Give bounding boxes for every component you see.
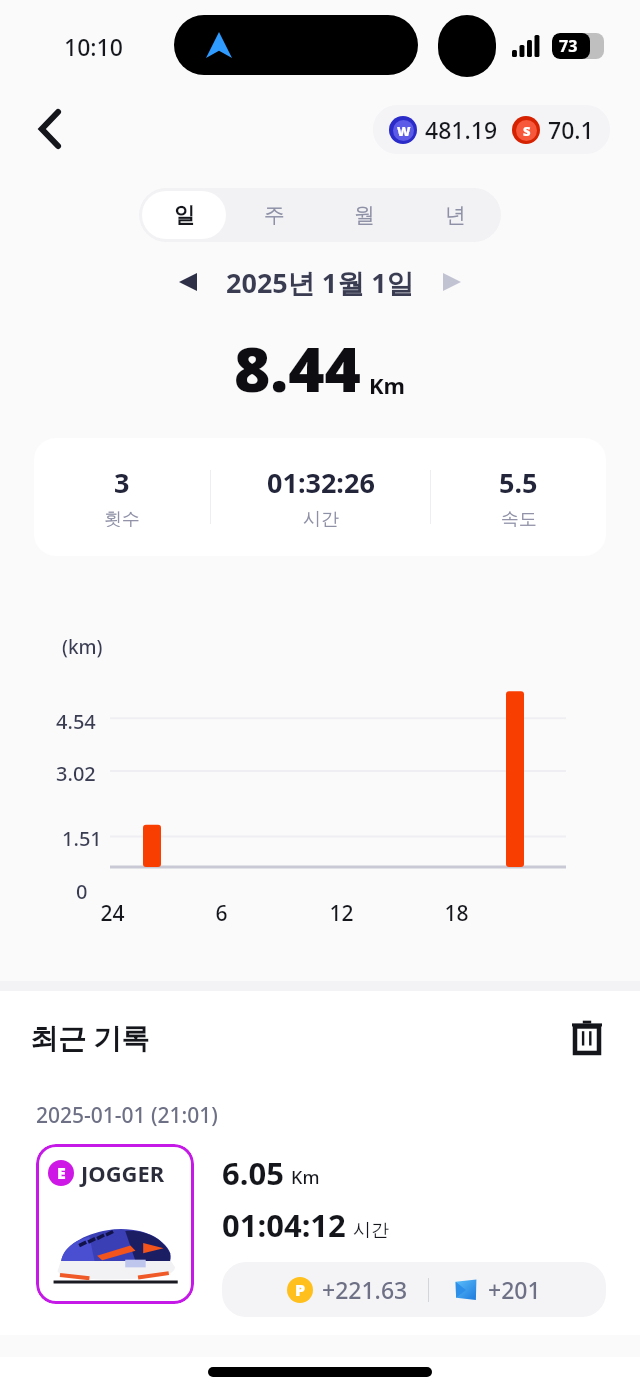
staticText: 1.51 bbox=[62, 825, 102, 852]
button[interactable]: E bbox=[36, 1144, 194, 1304]
staticText: Km bbox=[369, 370, 406, 400]
staticText: 년 bbox=[445, 202, 466, 228]
staticText: 01:32:26 bbox=[267, 464, 375, 501]
staticText: 12 bbox=[329, 899, 354, 928]
staticText: W bbox=[397, 122, 411, 140]
staticText: 시간 bbox=[353, 1219, 389, 1242]
button[interactable]: Previous day bbox=[166, 260, 210, 304]
staticText: 0 bbox=[76, 878, 88, 905]
staticText: S bbox=[523, 122, 531, 140]
button[interactable]: 년 bbox=[413, 191, 498, 239]
button[interactable]: 3 bbox=[34, 438, 606, 556]
staticText: 4.54 bbox=[56, 708, 96, 735]
staticText: 01:04:12 bbox=[222, 1204, 346, 1246]
staticText: 최근 기록 bbox=[30, 1018, 150, 1056]
staticText: Km bbox=[291, 1165, 320, 1190]
staticText: 일 bbox=[174, 202, 195, 228]
staticText: (km) bbox=[62, 634, 103, 660]
staticText: +221.63 bbox=[322, 1274, 408, 1305]
staticText: 70.1 bbox=[548, 114, 594, 145]
staticText: 횟수 bbox=[104, 508, 140, 531]
button[interactable]: 월 bbox=[322, 191, 407, 239]
staticText: 18 bbox=[444, 899, 469, 928]
staticText: E bbox=[57, 1162, 66, 1184]
staticText: 6 bbox=[215, 899, 228, 928]
button[interactable]: Next day bbox=[430, 260, 474, 304]
staticText: 시간 bbox=[303, 508, 339, 531]
button[interactable]: 일 bbox=[142, 191, 226, 239]
staticText: 3 bbox=[114, 464, 130, 501]
staticText: 10:10 bbox=[64, 31, 123, 62]
button[interactable]: Delete records bbox=[560, 1010, 614, 1064]
staticText: P bbox=[295, 1279, 306, 1301]
staticText: 24 bbox=[100, 899, 125, 928]
staticText: 2025년 1월 1일 bbox=[226, 264, 414, 301]
button[interactable]: P bbox=[222, 1262, 606, 1317]
staticText: 481.19 bbox=[425, 114, 498, 145]
staticText: 8.44 bbox=[234, 326, 361, 410]
staticText: 3.02 bbox=[56, 760, 96, 787]
button[interactable]: W bbox=[373, 105, 610, 154]
button[interactable]: 주 bbox=[232, 191, 316, 239]
staticText: 속도 bbox=[501, 508, 537, 531]
staticText: JOGGER bbox=[81, 1158, 165, 1188]
button[interactable]: 2025-01-01 (21:01) bbox=[14, 1083, 626, 1335]
staticText: 73 bbox=[559, 35, 578, 57]
staticText: 6.05 bbox=[222, 1152, 284, 1194]
staticText: 주 bbox=[264, 202, 285, 228]
staticText: 월 bbox=[354, 202, 375, 228]
staticText: 5.5 bbox=[499, 464, 538, 501]
button[interactable]: Back bbox=[24, 102, 78, 156]
staticText: 2025-01-01 (21:01) bbox=[36, 1101, 218, 1130]
staticText: +201 bbox=[488, 1274, 541, 1305]
